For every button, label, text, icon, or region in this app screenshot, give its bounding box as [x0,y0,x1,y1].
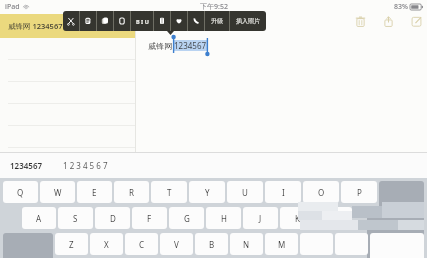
button[interactable]: X [90,233,123,255]
staticText: Q [17,187,24,198]
staticText: O [318,187,325,198]
button[interactable]: W [40,181,75,203]
staticText: G [184,213,190,224]
button[interactable]: 插入照片 [230,11,266,31]
staticText: 1234567 [10,160,43,171]
button[interactable]: Cut [63,11,79,31]
button[interactable]: M [265,233,298,255]
button[interactable] [0,82,135,104]
button[interactable]: Share [380,13,397,30]
staticText: T [167,187,172,198]
staticText: 下午9:52 [200,2,228,12]
staticText: Y [205,187,210,198]
staticText: K [295,213,300,224]
button[interactable]: S [58,207,93,229]
staticText: E [92,187,97,198]
button[interactable]: Q [3,181,38,203]
button[interactable]: Compose [408,13,425,30]
button[interactable]: B [195,233,228,255]
button[interactable]: Call [188,11,204,31]
staticText: J [259,213,262,224]
button[interactable]: Delete [352,13,369,30]
staticText: N [243,239,250,250]
button[interactable]: Paste [97,11,113,31]
staticText: F [147,213,152,224]
staticText: 1234567 [174,40,207,51]
button[interactable]: H [206,207,241,229]
staticText: I [282,187,285,198]
button[interactable]: I [265,181,301,203]
staticText: 插入照片 [236,17,260,25]
staticText: P [357,187,362,198]
staticText: 威锋网 [148,41,172,51]
staticText: D [110,213,116,224]
staticText: 升级 [211,17,223,25]
button[interactable]: Delete [379,181,424,258]
staticText: X [104,239,109,250]
button[interactable]: Z [55,233,88,255]
button[interactable]: P [341,181,377,203]
button[interactable]: L [317,207,352,229]
staticText: U [242,187,248,198]
button[interactable] [0,38,135,60]
button[interactable]: J [243,207,278,229]
staticText: V [174,239,179,250]
button[interactable]: O [303,181,339,203]
staticText: Z [69,239,74,250]
button[interactable]: Return [367,207,424,258]
staticText: W [54,187,62,198]
staticText: 1 2 3 4 5 6 7 [63,160,108,171]
staticText: 83% [394,2,408,12]
button[interactable]: N [230,233,263,255]
button[interactable]: K [280,207,315,229]
staticText: H [221,213,227,224]
button[interactable]: Y [189,181,225,203]
button[interactable]: Duplicate [114,11,130,31]
button[interactable]: R [114,181,149,203]
button[interactable]: Favorite [171,11,187,31]
button[interactable]: F [132,207,167,229]
button[interactable]: G [169,207,204,229]
button[interactable] [0,104,135,126]
staticText: S [73,213,78,224]
staticText: A [36,213,42,224]
staticText: C [139,239,145,250]
button[interactable]: 升级 [205,11,229,31]
button[interactable] [0,126,135,148]
button[interactable]: 1234567 [10,160,43,171]
button[interactable]: U [227,181,263,203]
button[interactable]: B I U [131,11,153,31]
staticText: L [332,213,337,224]
button[interactable]: 威锋网 1234567 [0,14,135,38]
button[interactable]: A [22,207,56,229]
button[interactable] [300,233,333,255]
staticText: B [209,239,215,250]
staticText: M [278,239,286,250]
button[interactable] [0,60,135,82]
button[interactable]: Bookmark [154,11,170,31]
button[interactable]: Copy [80,11,96,31]
button[interactable]: 1 2 3 4 5 6 7 [63,160,108,171]
button[interactable] [335,233,368,255]
button[interactable]: T [151,181,187,203]
staticText: R [129,187,134,198]
staticText: B I U [136,18,149,25]
button[interactable]: E [77,181,112,203]
button[interactable]: Shift [370,233,424,258]
staticText: 威锋网 1234567 [8,21,63,31]
staticText: iPad [5,2,20,12]
button[interactable]: D [95,207,130,229]
button[interactable]: C [125,233,158,255]
button[interactable]: V [160,233,193,255]
